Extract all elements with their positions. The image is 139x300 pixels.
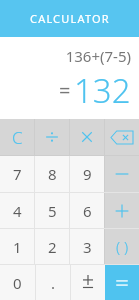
staticText: 8 xyxy=(48,164,57,184)
button[interactable]: 4 xyxy=(0,193,34,228)
staticText: CALCULATOR xyxy=(30,11,110,26)
staticText: 3 xyxy=(83,237,92,257)
button[interactable]: Backspace xyxy=(105,119,139,155)
button[interactable]: 7 xyxy=(0,156,34,192)
staticText: 2 xyxy=(48,237,57,257)
button[interactable]: Plus minus xyxy=(71,265,105,300)
button[interactable]: 2 xyxy=(35,229,69,264)
staticText: C xyxy=(12,126,23,149)
button[interactable]: 9 xyxy=(70,156,104,192)
button[interactable]: C xyxy=(0,119,34,155)
button[interactable]: 0 xyxy=(0,265,35,300)
button[interactable] xyxy=(35,119,69,155)
staticText: 136+(7-5) xyxy=(65,46,131,66)
staticText: 6 xyxy=(83,201,92,221)
button[interactable]: 1 xyxy=(0,229,34,264)
staticText: . xyxy=(51,273,56,293)
staticText: 1 xyxy=(13,237,22,257)
staticText: 9 xyxy=(83,164,92,184)
staticText: = xyxy=(59,77,71,104)
staticText: 7 xyxy=(13,164,22,184)
button[interactable]: ( ) xyxy=(105,229,139,264)
button[interactable]: 5 xyxy=(35,193,69,228)
button[interactable]: 8 xyxy=(35,156,69,192)
button[interactable]: Equals xyxy=(105,265,139,300)
button[interactable]: 6 xyxy=(70,193,104,228)
button[interactable]: 3 xyxy=(70,229,104,264)
button[interactable]: . xyxy=(36,265,70,300)
staticText: 0 xyxy=(13,273,22,293)
staticText: 4 xyxy=(13,201,22,221)
staticText: 5 xyxy=(48,201,57,221)
staticText: 132 xyxy=(74,68,131,113)
button[interactable] xyxy=(105,156,139,192)
button[interactable] xyxy=(105,193,139,228)
button[interactable] xyxy=(70,119,104,155)
staticText: ( ) xyxy=(116,237,129,257)
